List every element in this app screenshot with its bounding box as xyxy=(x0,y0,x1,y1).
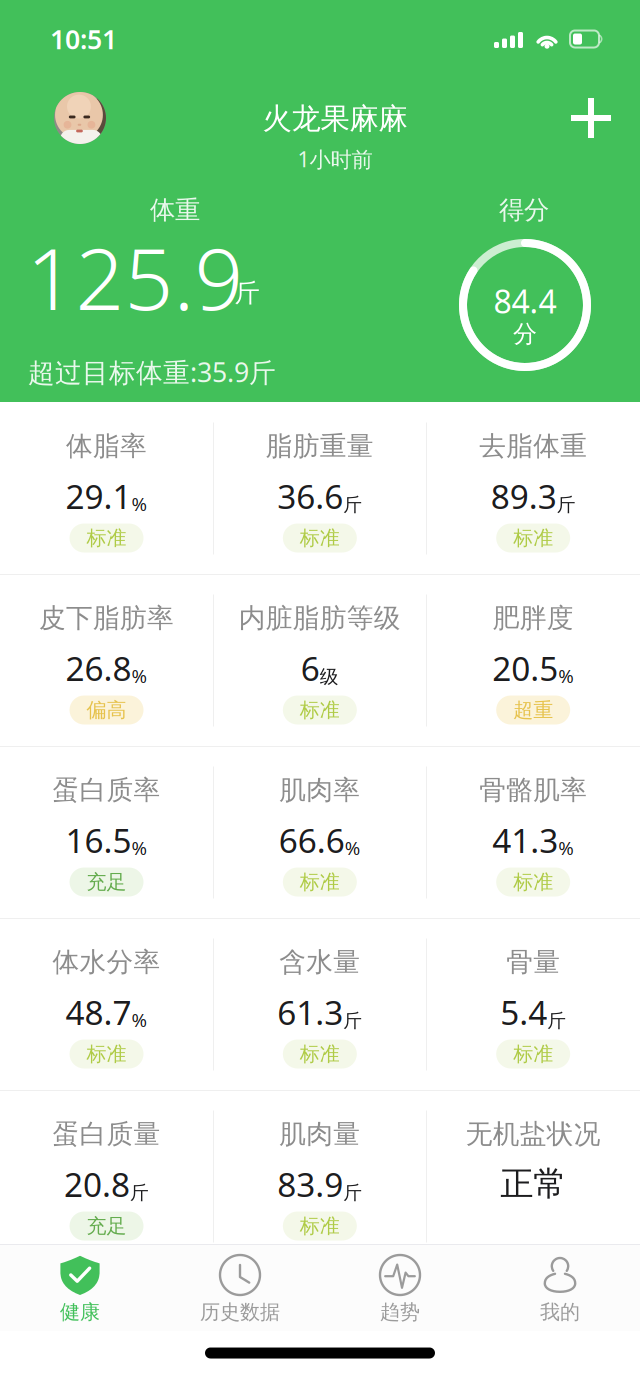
button[interactable]: 肌肉量 xyxy=(213,1091,427,1262)
staticText: 斤 xyxy=(343,1181,362,1204)
staticText: 充足 xyxy=(86,870,126,894)
button[interactable]: 肌肉率 xyxy=(213,747,427,918)
staticText: 标准 xyxy=(300,698,340,722)
staticText: % xyxy=(558,835,574,860)
button[interactable]: 含水量 xyxy=(213,919,427,1090)
staticText: 20.8 xyxy=(64,1162,130,1206)
staticText: 61.3 xyxy=(277,990,343,1034)
staticText: 正常 xyxy=(500,1163,566,1204)
staticText: 26.8 xyxy=(65,646,131,690)
button[interactable]: Add xyxy=(562,89,620,147)
staticText: % xyxy=(131,1007,147,1032)
staticText: 肥胖度 xyxy=(493,602,574,634)
button[interactable]: 体脂率 xyxy=(0,403,213,574)
staticText: 皮下脂肪率 xyxy=(39,602,174,634)
staticText: 16.5 xyxy=(65,818,131,862)
staticText: 超过目标体重:35.9斤 xyxy=(28,354,276,390)
staticText: 蛋白质率 xyxy=(52,774,160,806)
staticText: 级 xyxy=(320,665,339,688)
staticText: 标准 xyxy=(513,870,553,894)
button[interactable]: 趋势 xyxy=(320,1245,480,1331)
staticText: 1小时前 xyxy=(297,145,372,173)
staticText: 36.6 xyxy=(277,474,343,518)
staticText: 骨量 xyxy=(506,946,560,978)
staticText: 标准 xyxy=(513,526,553,550)
staticText: 48.7 xyxy=(65,990,131,1034)
staticText: 标准 xyxy=(86,526,126,550)
button[interactable]: 骨骼肌率 xyxy=(427,747,640,918)
staticText: 骨骼肌率 xyxy=(479,774,587,806)
staticText: 斤 xyxy=(343,1009,362,1032)
staticText: 41.3 xyxy=(492,818,558,862)
button[interactable]: 历史数据 xyxy=(160,1245,320,1331)
staticText: 充足 xyxy=(86,1214,126,1238)
staticText: 含水量 xyxy=(279,946,360,978)
staticText: 分 xyxy=(513,319,537,349)
button[interactable]: 我的 xyxy=(480,1245,640,1331)
staticText: 66.6 xyxy=(279,818,345,862)
staticText: 脂肪重量 xyxy=(266,430,374,462)
staticText: % xyxy=(558,663,574,688)
staticText: 肌肉率 xyxy=(279,774,360,806)
staticText: 斤 xyxy=(130,1181,149,1204)
staticText: 内脏脂肪等级 xyxy=(239,602,401,634)
button[interactable]: 健康 xyxy=(0,1245,160,1331)
staticText: 斤 xyxy=(234,277,259,308)
staticText: 标准 xyxy=(86,1042,126,1066)
staticText: % xyxy=(131,491,147,516)
button[interactable]: 蛋白质率 xyxy=(0,747,213,918)
staticText: % xyxy=(345,835,361,860)
staticText: 斤 xyxy=(557,493,576,516)
staticText: 健康 xyxy=(60,1300,100,1324)
staticText: 84.4 xyxy=(493,280,556,322)
staticText: 得分 xyxy=(499,194,549,225)
staticText: 趋势 xyxy=(380,1300,420,1324)
button[interactable]: 肥胖度 xyxy=(427,575,640,746)
staticText: % xyxy=(131,835,147,860)
staticText: 去脂体重 xyxy=(479,430,587,462)
staticText: 肌肉量 xyxy=(279,1118,360,1150)
button[interactable]: 骨量 xyxy=(427,919,640,1090)
staticText: 标准 xyxy=(300,526,340,550)
staticText: 斤 xyxy=(547,1009,566,1032)
staticText: 89.3 xyxy=(491,474,557,518)
staticText: 无机盐状况 xyxy=(466,1118,601,1150)
staticText: 5.4 xyxy=(500,990,547,1034)
staticText: % xyxy=(131,663,147,688)
button[interactable]: 无机盐状况 xyxy=(427,1091,640,1262)
staticText: 125.9 xyxy=(26,220,243,334)
staticText: 超重 xyxy=(513,698,553,722)
staticText: 标准 xyxy=(300,870,340,894)
staticText: 我的 xyxy=(540,1300,580,1324)
staticText: 标准 xyxy=(300,1214,340,1238)
staticText: 83.9 xyxy=(277,1162,343,1206)
staticText: 体脂率 xyxy=(66,430,147,462)
staticText: 历史数据 xyxy=(200,1300,280,1324)
staticText: 偏高 xyxy=(86,698,126,722)
button[interactable]: 内脏脂肪等级 xyxy=(213,575,427,746)
button[interactable]: 体水分率 xyxy=(0,919,213,1090)
staticText: 火龙果麻麻 xyxy=(262,101,407,137)
staticText: 6 xyxy=(301,646,320,690)
button[interactable]: 脂肪重量 xyxy=(213,403,427,574)
staticText: 10:51 xyxy=(50,21,117,57)
button[interactable]: 蛋白质量 xyxy=(0,1091,213,1262)
button[interactable]: 皮下脂肪率 xyxy=(0,575,213,746)
staticText: 斤 xyxy=(343,493,362,516)
staticText: 体重 xyxy=(150,194,200,225)
staticText: 蛋白质量 xyxy=(52,1118,160,1150)
staticText: 标准 xyxy=(513,1042,553,1066)
staticText: 体水分率 xyxy=(52,946,160,978)
button[interactable]: 去脂体重 xyxy=(427,403,640,574)
staticText: 20.5 xyxy=(492,646,558,690)
staticText: 29.1 xyxy=(65,474,131,518)
staticText: 标准 xyxy=(300,1042,340,1066)
